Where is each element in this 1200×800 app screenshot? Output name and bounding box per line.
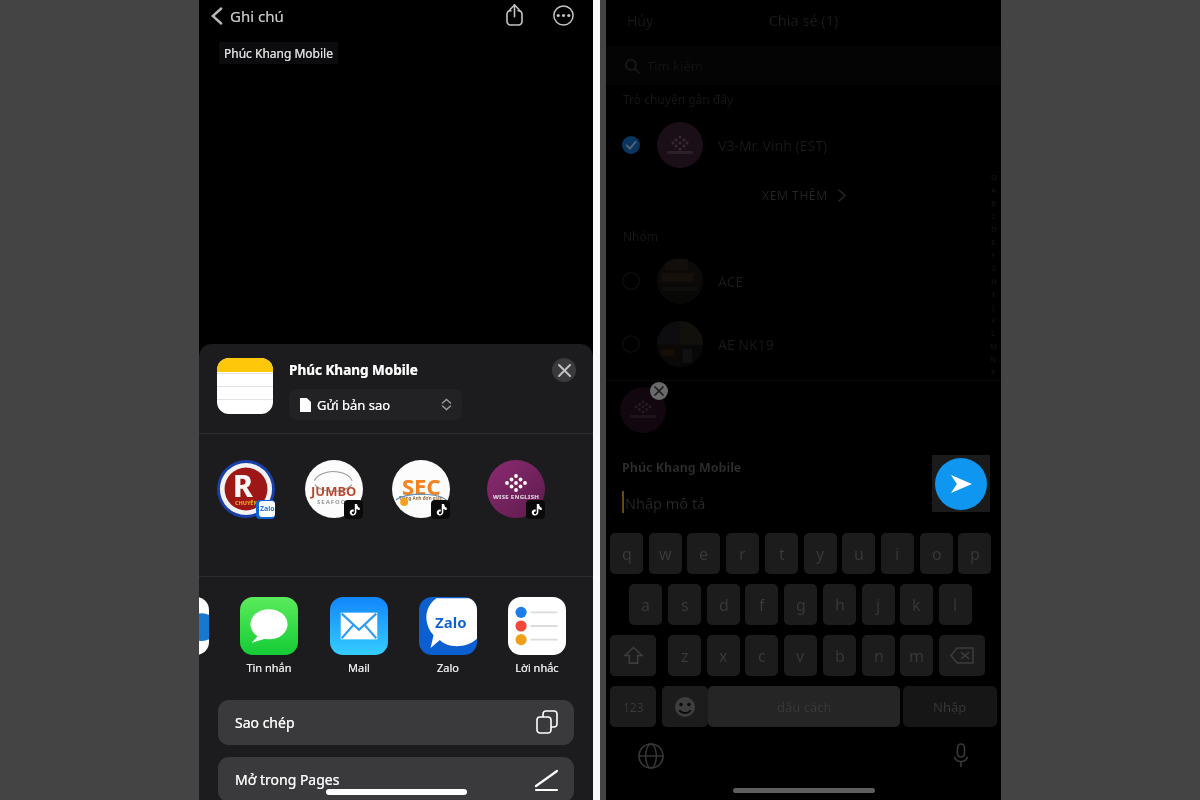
button[interactable]: Tin nhắn: [234, 597, 304, 675]
staticText: i: [895, 543, 900, 565]
staticText: Trò chuyện gần đây: [623, 91, 734, 107]
staticText: o: [932, 543, 942, 565]
button[interactable]: [610, 635, 656, 676]
staticText: 123: [623, 699, 644, 715]
staticText: Nhập: [933, 698, 967, 716]
staticText: A: [991, 185, 997, 195]
staticText: j: [876, 594, 881, 616]
staticText: Zalo: [413, 660, 483, 675]
button[interactable]: Change keyboard: [636, 741, 666, 771]
staticText: E: [991, 237, 996, 247]
button[interactable]: x: [707, 635, 740, 676]
button[interactable]: j: [862, 584, 895, 625]
staticText: Nhập mô tả: [625, 493, 706, 513]
button[interactable]: p: [958, 533, 991, 574]
button[interactable]: z: [668, 635, 701, 676]
staticText: C: [991, 211, 996, 221]
button[interactable]: o: [920, 533, 953, 574]
button[interactable]: Shift: [610, 635, 656, 676]
staticText: Hủy: [627, 11, 654, 30]
button[interactable]: Ghi chú: [211, 4, 284, 28]
button[interactable]: Gửi bản sao: [289, 389, 462, 420]
button[interactable]: f: [745, 584, 778, 625]
button[interactable]: Send: [932, 455, 990, 512]
staticText: Zalo: [435, 612, 467, 632]
button[interactable]: Contact: [217, 460, 275, 518]
staticText: q: [622, 543, 632, 565]
staticText: v: [796, 645, 805, 667]
button[interactable]: V3-Mr. Vinh (EST): [606, 122, 1001, 168]
button[interactable]: b: [823, 635, 856, 676]
button[interactable]: a: [629, 584, 662, 625]
button[interactable]: Dictate: [946, 741, 976, 771]
button[interactable]: Nhập: [903, 686, 997, 727]
staticText: Mở trong Pages: [235, 770, 340, 789]
button[interactable]: Contact: [487, 460, 545, 518]
staticText: g: [796, 594, 806, 616]
button[interactable]: m: [900, 635, 933, 676]
button[interactable]: h: [823, 584, 856, 625]
button[interactable]: Sao chép: [218, 700, 574, 745]
button[interactable]: l: [939, 584, 972, 625]
button[interactable]: ACE: [606, 258, 1001, 304]
button[interactable]: k: [900, 584, 933, 625]
staticText: e: [699, 543, 709, 565]
staticText: l: [953, 594, 958, 616]
button[interactable]: Contact: [392, 460, 450, 518]
button[interactable]: 123: [610, 686, 656, 727]
staticText: k: [912, 594, 921, 616]
staticText: R: [233, 465, 253, 506]
button[interactable]: u: [842, 533, 875, 574]
button[interactable]: n: [862, 635, 895, 676]
button[interactable]: Backspace: [939, 635, 985, 676]
button[interactable]: t: [765, 533, 798, 574]
button[interactable]: i: [881, 533, 914, 574]
staticText: D: [991, 224, 997, 234]
button[interactable]: c: [745, 635, 778, 676]
button[interactable]: Contact: [305, 460, 363, 518]
button[interactable]: Mail: [324, 597, 394, 675]
staticText: w: [659, 543, 672, 565]
button[interactable]: Mở trong Pages: [218, 757, 574, 800]
button[interactable]: y: [804, 533, 837, 574]
button[interactable]: e: [687, 533, 720, 574]
staticText: WISE ENGLISH: [493, 493, 540, 501]
staticText: H: [991, 276, 997, 286]
button[interactable]: Share: [500, 0, 528, 28]
button[interactable]: d: [707, 584, 740, 625]
staticText: a: [641, 594, 650, 616]
staticText: I: [992, 289, 995, 299]
button[interactable]: g: [784, 584, 817, 625]
staticText: t: [779, 543, 785, 565]
staticText: u: [854, 543, 864, 565]
staticText: dấu cách: [777, 698, 832, 716]
button[interactable]: q: [610, 533, 643, 574]
staticText: G: [991, 263, 997, 273]
button[interactable]: AE NK19: [606, 321, 1001, 367]
button[interactable]: Close: [552, 358, 576, 382]
staticText: h: [835, 594, 845, 616]
staticText: Tiếng Anh đơn giản: [399, 495, 443, 501]
button[interactable]: Zalo: [413, 597, 483, 675]
staticText: ACE: [718, 272, 744, 291]
staticText: V3-Mr. Vinh (EST): [718, 136, 828, 155]
staticText: XEM THÊM: [762, 187, 828, 203]
button[interactable]: Remove attachment: [650, 382, 668, 400]
button[interactable]: s: [668, 584, 701, 625]
button[interactable]: Hủy: [627, 11, 654, 30]
button[interactable]: Lời nhắc: [502, 597, 572, 675]
button[interactable]: Emoji: [662, 686, 708, 727]
button[interactable]: XEM THÊM: [606, 183, 1001, 207]
staticText: Q: [991, 172, 997, 182]
staticText: Tìm kiếm: [647, 57, 703, 75]
staticText: AE NK19: [718, 335, 774, 354]
button[interactable]: v: [784, 635, 817, 676]
staticText: N: [990, 354, 997, 364]
staticText: Lời nhắc: [502, 660, 572, 675]
button[interactable]: r: [726, 533, 759, 574]
button[interactable]: More options: [549, 1, 577, 29]
button[interactable]: w: [649, 533, 682, 574]
staticText: Ghi chú: [230, 6, 284, 26]
